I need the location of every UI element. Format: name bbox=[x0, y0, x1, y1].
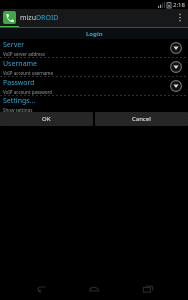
button[interactable]: OK bbox=[0, 112, 93, 126]
staticText: Username bbox=[3, 59, 38, 69]
staticText: VoIP account password bbox=[3, 89, 53, 95]
button[interactable]: Recent apps bbox=[135, 278, 161, 300]
staticText: Settings... bbox=[3, 96, 36, 106]
button[interactable]: Show Username options bbox=[170, 61, 182, 73]
staticText: DROID bbox=[36, 13, 59, 23]
staticText: Show settings bbox=[3, 107, 33, 112]
button[interactable]: Settings... bbox=[0, 96, 188, 112]
button[interactable]: Back bbox=[28, 278, 54, 300]
other: App logo bbox=[3, 11, 16, 24]
staticText: Server bbox=[3, 40, 25, 50]
staticText: Login bbox=[86, 30, 103, 38]
staticText: mizu bbox=[20, 13, 36, 23]
staticText: Password bbox=[3, 78, 35, 88]
button[interactable]: Username bbox=[0, 58, 188, 76]
button[interactable]: Show Password options bbox=[170, 80, 182, 92]
button[interactable]: Server bbox=[0, 39, 188, 57]
staticText: Cancel bbox=[132, 115, 151, 123]
button[interactable]: Cancel bbox=[95, 112, 188, 126]
button[interactable]: Home bbox=[81, 278, 107, 300]
button[interactable]: More options bbox=[172, 9, 188, 26]
staticText: OK bbox=[42, 115, 51, 123]
staticText: 2:18 bbox=[173, 1, 185, 9]
staticText: VoIP server address bbox=[3, 51, 45, 57]
button[interactable]: Password bbox=[0, 77, 188, 95]
button[interactable]: Show Server options bbox=[170, 42, 182, 54]
staticText: VoIP account username bbox=[3, 70, 54, 76]
